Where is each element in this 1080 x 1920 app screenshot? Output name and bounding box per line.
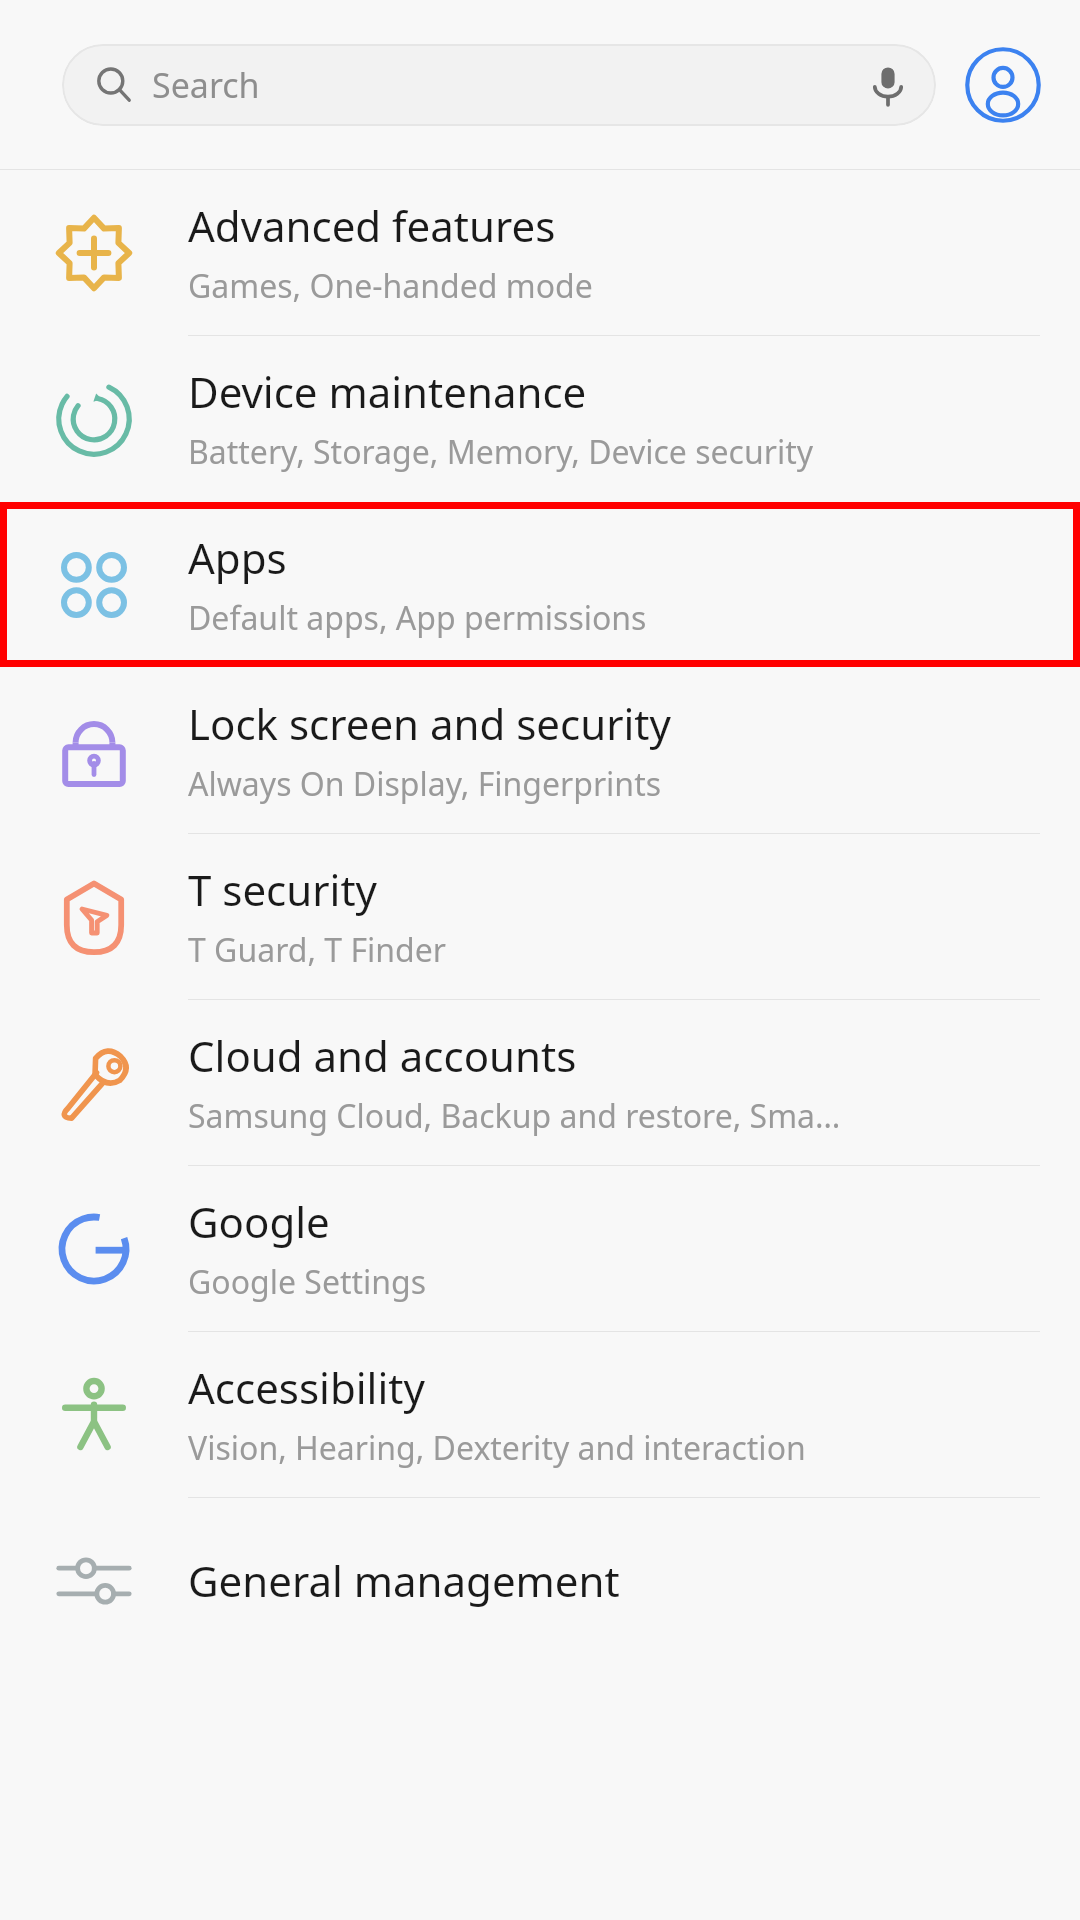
staticText: General management xyxy=(188,1552,620,1609)
button[interactable]: Cloud and accounts xyxy=(0,1000,1080,1165)
staticText: Games, One-handed mode xyxy=(188,264,593,308)
button[interactable]: T security xyxy=(0,834,1080,999)
button[interactable]: Device maintenance xyxy=(0,336,1080,501)
staticText: Cloud and accounts xyxy=(188,1027,577,1084)
staticText: Always On Display, Fingerprints xyxy=(188,762,662,806)
staticText: Device maintenance xyxy=(188,363,587,420)
staticText: Samsung Cloud, Backup and restore, Sma… xyxy=(188,1094,841,1138)
staticText: T Guard, T Finder xyxy=(188,928,446,972)
button[interactable]: Accessibility xyxy=(0,1332,1080,1497)
staticText: Accessibility xyxy=(188,1359,425,1416)
staticText: Google Settings xyxy=(188,1260,427,1304)
button[interactable]: Google xyxy=(0,1166,1080,1331)
staticText: Search xyxy=(152,62,260,108)
button[interactable]: General management xyxy=(0,1498,1080,1663)
staticText: Battery, Storage, Memory, Device securit… xyxy=(188,430,814,474)
button[interactable]: Apps xyxy=(0,502,1080,667)
staticText: Vision, Hearing, Dexterity and interacti… xyxy=(188,1426,806,1470)
button[interactable]: Search xyxy=(62,44,936,126)
staticText: Lock screen and security xyxy=(188,695,671,752)
staticText: T security xyxy=(188,861,377,918)
button[interactable]: Advanced features xyxy=(0,170,1080,335)
staticText: Apps xyxy=(188,529,287,586)
button[interactable]: Account xyxy=(962,44,1044,126)
staticText: Default apps, App permissions xyxy=(188,596,647,640)
button[interactable]: Lock screen and security xyxy=(0,668,1080,833)
staticText: Advanced features xyxy=(188,197,556,254)
staticText: Google xyxy=(188,1193,330,1250)
